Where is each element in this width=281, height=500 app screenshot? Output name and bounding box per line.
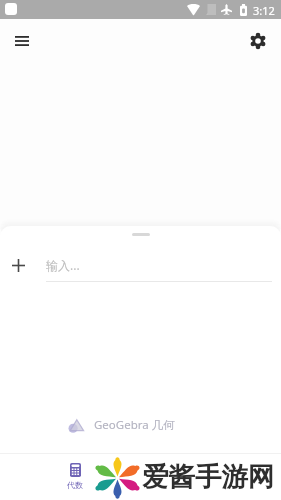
button[interactable]: 代数 [40,454,110,500]
staticText: 输入... [46,257,80,273]
staticText: GeoGebra 几何 [94,417,175,433]
staticText: 3:12 [253,3,275,18]
staticText: 爱酱手游网 [142,460,275,493]
button[interactable]: Settings [242,25,274,57]
staticText: 代数 [67,480,83,490]
button[interactable]: 输入... [0,246,281,284]
button[interactable]: Menu [6,25,38,57]
